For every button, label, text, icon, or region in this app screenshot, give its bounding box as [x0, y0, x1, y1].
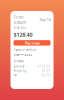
staticText: Payment method	[13, 48, 36, 52]
staticText: Shipping	[13, 69, 26, 72]
staticText: $4.00	[41, 73, 50, 77]
staticText: $128.40	[13, 31, 32, 38]
button[interactable]: Pay now	[13, 40, 50, 46]
staticText: Subtotal	[13, 65, 24, 68]
staticText: Summary	[13, 59, 23, 63]
staticText: Tax	[13, 73, 16, 77]
staticText: $118.00	[37, 65, 50, 68]
staticText: Visa •••• 4242	[13, 53, 32, 56]
staticText: Total due	[13, 26, 26, 29]
staticText: Order #48201	[13, 14, 26, 25]
staticText: Pay now	[24, 40, 39, 45]
staticText: Sep 14	[39, 17, 50, 22]
staticText: $6.40	[41, 69, 50, 72]
